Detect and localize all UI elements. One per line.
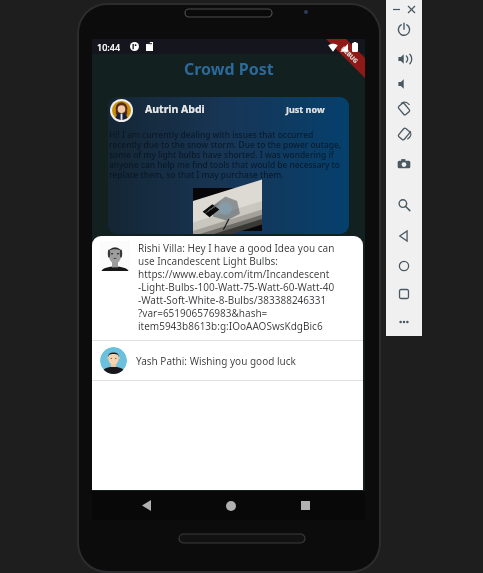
button[interactable]: Overview: [390, 280, 418, 308]
staticText: Autrin Abdi: [145, 102, 205, 116]
staticText: 10:44: [97, 41, 121, 53]
button[interactable]: Yash Pathi: Wishing you good luck: [92, 341, 363, 380]
button[interactable]: Back: [390, 222, 418, 250]
button[interactable]: Recent apps: [291, 491, 320, 520]
staticText: DEBUG: [339, 45, 360, 65]
button[interactable]: Home: [390, 252, 418, 280]
staticText: Just now: [286, 103, 325, 115]
staticText: Yash Pathi: Wishing you good luck: [136, 354, 296, 368]
staticText: Hi! I am currently dealing with issues t…: [109, 129, 343, 180]
button[interactable]: Rotate left: [390, 95, 418, 123]
button[interactable]: Zoom: [390, 191, 418, 219]
button[interactable]: Volume up: [390, 45, 418, 73]
button[interactable]: Take screenshot: [390, 150, 418, 178]
button[interactable]: Power: [390, 15, 418, 43]
button[interactable]: Home: [216, 491, 245, 520]
button[interactable]: Back: [132, 491, 161, 520]
staticText: Rishi Villa: Hey I have a good Idea you …: [138, 241, 335, 333]
button[interactable]: Rishi Villa: Hey I have a good Idea you …: [92, 236, 363, 340]
button[interactable]: More: [390, 308, 418, 336]
staticText: Crowd Post: [184, 58, 274, 80]
button[interactable]: Rotate right: [390, 120, 418, 148]
button[interactable]: Volume down: [390, 70, 418, 98]
